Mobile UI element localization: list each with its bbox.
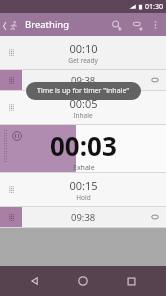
button[interactable]: Home: [70, 268, 96, 294]
staticText: 01:30: [145, 2, 163, 12]
staticText: Exhale: [73, 163, 95, 173]
button[interactable]: 09:38: [0, 207, 166, 227]
staticText: 00:15: [69, 178, 98, 193]
staticText: 00:10: [69, 41, 98, 56]
staticText: Hold: [76, 193, 91, 202]
button[interactable]: Recent apps: [118, 268, 144, 294]
button[interactable]: Repeat: [149, 74, 161, 86]
button[interactable]: Navigate up: [2, 16, 20, 34]
staticText: 00:05: [69, 96, 98, 111]
staticText: Time is up for timer "inhale": [37, 86, 130, 96]
button[interactable]: Pause: [11, 130, 23, 142]
button[interactable]: Add loop: [128, 16, 146, 34]
button[interactable]: Add timer: [107, 16, 125, 34]
staticText: Get ready: [68, 56, 98, 65]
button[interactable]: More options: [148, 18, 162, 32]
button[interactable]: 00:10: [0, 36, 166, 69]
button[interactable]: 00:15: [0, 173, 166, 206]
staticText: 00:03: [50, 128, 117, 163]
button[interactable]: Repeat: [149, 211, 161, 223]
button[interactable]: 00:05: [0, 91, 166, 124]
staticText: 09:38: [71, 211, 96, 224]
button[interactable]: Back: [22, 268, 48, 294]
button[interactable]: 09:38: [0, 70, 166, 90]
button[interactable]: Pause: [0, 125, 166, 172]
staticText: 09:38: [71, 74, 96, 87]
staticText: Breathing: [25, 18, 70, 31]
staticText: Inhale: [73, 111, 93, 120]
